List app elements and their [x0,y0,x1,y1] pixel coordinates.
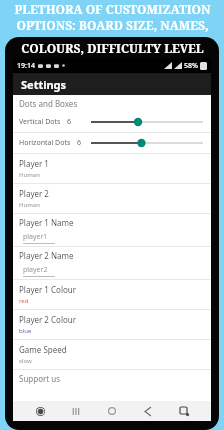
staticText: 19:14 [17,61,35,71]
button[interactable]: Player 1 [13,154,211,183]
staticText: 6 [67,117,72,127]
button[interactable]: Player 2 [13,184,211,213]
staticText: Human [19,171,40,179]
staticText: Settings [21,77,67,92]
staticText: Player 1 Name [19,217,74,228]
staticText: Dots and Boxes [19,98,78,109]
button[interactable]: Assistant [31,402,49,420]
staticText: PLETHORA OF CUSTOMIZATION [14,1,211,17]
staticText: red [19,297,29,305]
staticText: blue [19,327,32,335]
button[interactable]: Split screen [175,402,193,420]
staticText: Human [19,201,40,209]
staticText: Player 2 Name [19,250,74,261]
staticText: Player 1 Colour [19,284,77,295]
staticText: slow [19,357,32,365]
button[interactable]: Back [139,402,157,420]
button[interactable]: Player 1 Name [13,214,211,246]
staticText: Player 2 [19,188,49,199]
staticText: Player 2 Colour [19,314,77,325]
staticText: OPTIONS: BOARD SIZE, NAMES, [16,17,209,33]
staticText: player1 [23,232,48,242]
button[interactable]: Vertical Dots [13,112,211,132]
button[interactable]: Recents [67,402,85,420]
button[interactable]: Game Speed [13,340,211,369]
staticText: Game Speed [19,344,67,355]
staticText: player2 [23,265,48,275]
staticText: COLOURS, DIFFICULTY LEVEL [21,40,204,56]
staticText: Support us [19,373,61,384]
button[interactable]: Player 2 Colour [13,310,211,339]
button[interactable]: Player 2 Name [13,247,211,279]
staticText: Horizontal Dots [19,138,71,148]
button[interactable]: Player 1 Colour [13,280,211,309]
staticText: 58% [184,61,198,71]
staticText: Player 1 [19,158,49,169]
button[interactable]: Horizontal Dots [13,133,211,153]
staticText: 6 [77,138,82,148]
button[interactable]: Home [103,402,121,420]
staticText: Vertical Dots [19,117,61,127]
